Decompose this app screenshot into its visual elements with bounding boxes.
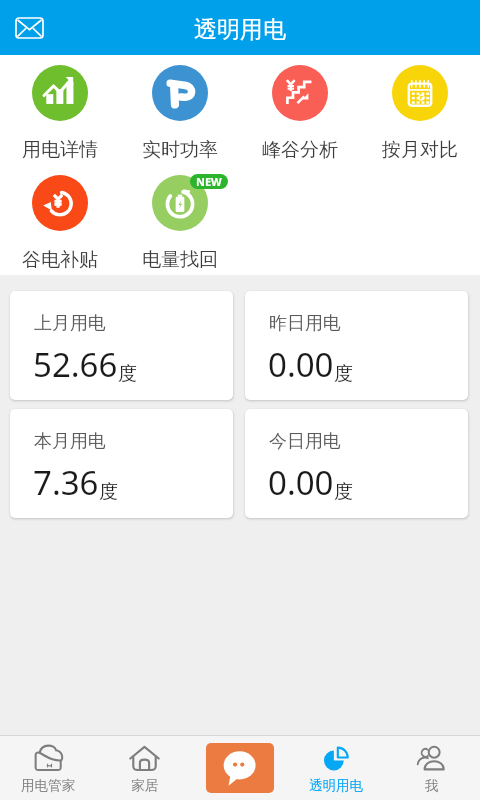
button[interactable]: 家居 (96, 736, 192, 800)
staticText: 我 (425, 777, 439, 794)
staticText: 度 (334, 480, 353, 504)
staticText: 今日用电 (269, 430, 341, 453)
button[interactable]: 我 (384, 736, 480, 800)
staticText: 峰谷分析 (262, 138, 338, 162)
staticText: 透明用电 (194, 15, 286, 44)
staticText: 度 (334, 362, 353, 386)
staticText: 用电详情 (22, 138, 98, 162)
staticText: 52.66 (33, 342, 118, 387)
staticText: 本月用电 (34, 430, 106, 453)
staticText: 用电管家 (21, 777, 75, 794)
staticText: 7.36 (33, 460, 99, 505)
staticText: 透明用电 (309, 777, 363, 794)
staticText: 0.00 (268, 342, 334, 387)
staticText: 度 (99, 480, 118, 504)
staticText: 家居 (131, 777, 158, 794)
button[interactable]: 用电详情 (0, 55, 120, 165)
button[interactable]: 用电管家 (0, 736, 96, 800)
button[interactable]: 实时功率 (120, 55, 240, 165)
staticText: 0.00 (268, 460, 334, 505)
staticText: 上月用电 (34, 312, 106, 335)
staticText: 实时功率 (142, 138, 218, 162)
staticText: 按月对比 (382, 138, 458, 162)
button[interactable]: 谷电补贴 (0, 165, 120, 275)
button[interactable]: 昨日用电 (245, 291, 468, 400)
staticText: 电量找回 (142, 248, 218, 272)
button[interactable]: 上月用电 (10, 291, 233, 400)
button[interactable]: 今日用电 (245, 409, 468, 518)
button[interactable]: 峰谷分析 (240, 55, 360, 165)
button[interactable]: 透明用电 (288, 736, 384, 800)
staticText: 谷电补贴 (22, 248, 98, 272)
staticText: 昨日用电 (269, 312, 341, 335)
staticText: NEW (196, 174, 222, 189)
button[interactable]: Chat (192, 736, 288, 800)
button[interactable]: NEW (120, 165, 240, 275)
button[interactable]: 本月用电 (10, 409, 233, 518)
staticText: 度 (118, 362, 137, 386)
button[interactable]: Messages (6, 5, 52, 51)
button[interactable]: 按月对比 (360, 55, 480, 165)
